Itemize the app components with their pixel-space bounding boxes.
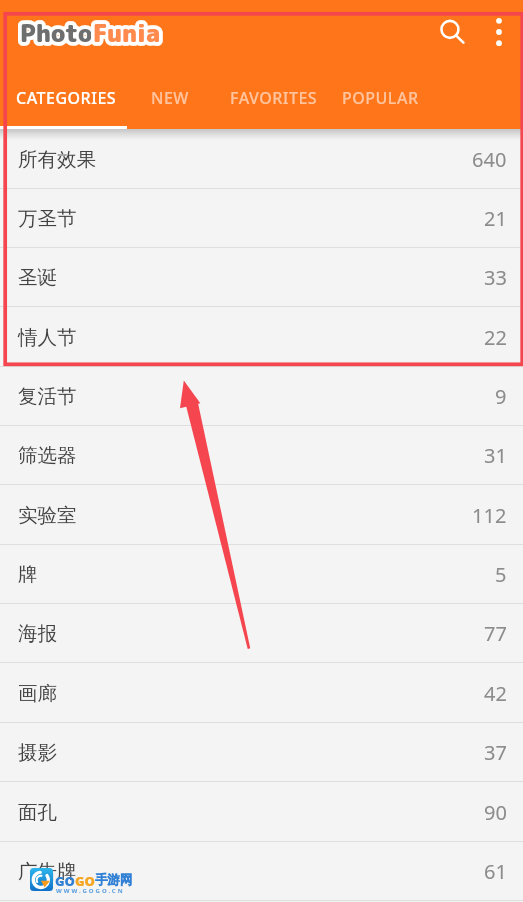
staticText: Funia bbox=[93, 16, 161, 49]
button[interactable]: POPULAR bbox=[324, 74, 437, 129]
staticText: 37 bbox=[484, 739, 507, 766]
staticText: 21 bbox=[484, 205, 507, 232]
button[interactable]: 万圣节 bbox=[0, 189, 523, 248]
button[interactable]: 复活节 bbox=[0, 367, 523, 426]
staticText: CATEGORIES bbox=[16, 87, 117, 109]
button[interactable]: 广告牌 bbox=[0, 842, 523, 901]
staticText: 33 bbox=[484, 264, 507, 291]
staticText: 海报 bbox=[18, 621, 57, 646]
button[interactable]: Search bbox=[427, 8, 475, 56]
button[interactable]: More options bbox=[475, 8, 522, 55]
staticText: 所有效果 bbox=[18, 147, 96, 172]
button[interactable]: 圣诞 bbox=[0, 248, 523, 307]
staticText: 牌 bbox=[18, 562, 38, 587]
staticText: 22 bbox=[484, 324, 507, 351]
staticText: 31 bbox=[484, 442, 507, 469]
staticText: 112 bbox=[472, 502, 507, 529]
button[interactable]: 摄影 bbox=[0, 723, 523, 782]
button[interactable]: 情人节 bbox=[0, 308, 523, 367]
staticText: GO bbox=[75, 872, 95, 890]
staticText: 画廊 bbox=[18, 681, 57, 706]
staticText: 640 bbox=[472, 146, 507, 173]
button[interactable]: 面孔 bbox=[0, 783, 523, 842]
button[interactable]: 实验室 bbox=[0, 486, 523, 545]
staticText: NEW bbox=[151, 87, 189, 109]
button[interactable]: 牌 bbox=[0, 545, 523, 604]
staticText: 圣诞 bbox=[18, 265, 57, 290]
staticText: WWW.GOGO.CN bbox=[56, 887, 125, 895]
staticText: 实验室 bbox=[18, 503, 77, 528]
staticText: Photo bbox=[20, 16, 93, 49]
staticText: 61 bbox=[484, 858, 507, 885]
button[interactable]: CATEGORIES bbox=[0, 74, 135, 129]
staticText: GO bbox=[55, 872, 75, 890]
staticText: 广告牌 bbox=[18, 859, 77, 884]
button[interactable]: 海报 bbox=[0, 604, 523, 663]
staticText: 万圣节 bbox=[18, 206, 77, 231]
button[interactable]: 筛选器 bbox=[0, 426, 523, 485]
staticText: 90 bbox=[484, 799, 507, 826]
button[interactable]: FAVORITES bbox=[212, 74, 336, 129]
staticText: 复活节 bbox=[18, 384, 77, 409]
staticText: POPULAR bbox=[342, 87, 419, 109]
staticText: FAVORITES bbox=[230, 87, 318, 109]
button[interactable]: NEW bbox=[133, 74, 207, 129]
staticText: 筛选器 bbox=[18, 443, 77, 468]
staticText: 情人节 bbox=[18, 325, 77, 350]
staticText: Photo bbox=[20, 16, 93, 49]
staticText: 5 bbox=[495, 561, 507, 588]
staticText: 9 bbox=[495, 383, 507, 410]
button[interactable]: 画廊 bbox=[0, 664, 523, 723]
staticText: 77 bbox=[484, 620, 507, 647]
button[interactable]: 所有效果 bbox=[0, 130, 523, 189]
staticText: 手游网 bbox=[95, 872, 133, 888]
staticText: 摄影 bbox=[18, 740, 57, 765]
staticText: 面孔 bbox=[18, 800, 57, 825]
staticText: 42 bbox=[484, 680, 507, 707]
staticText: Funia bbox=[93, 16, 161, 49]
